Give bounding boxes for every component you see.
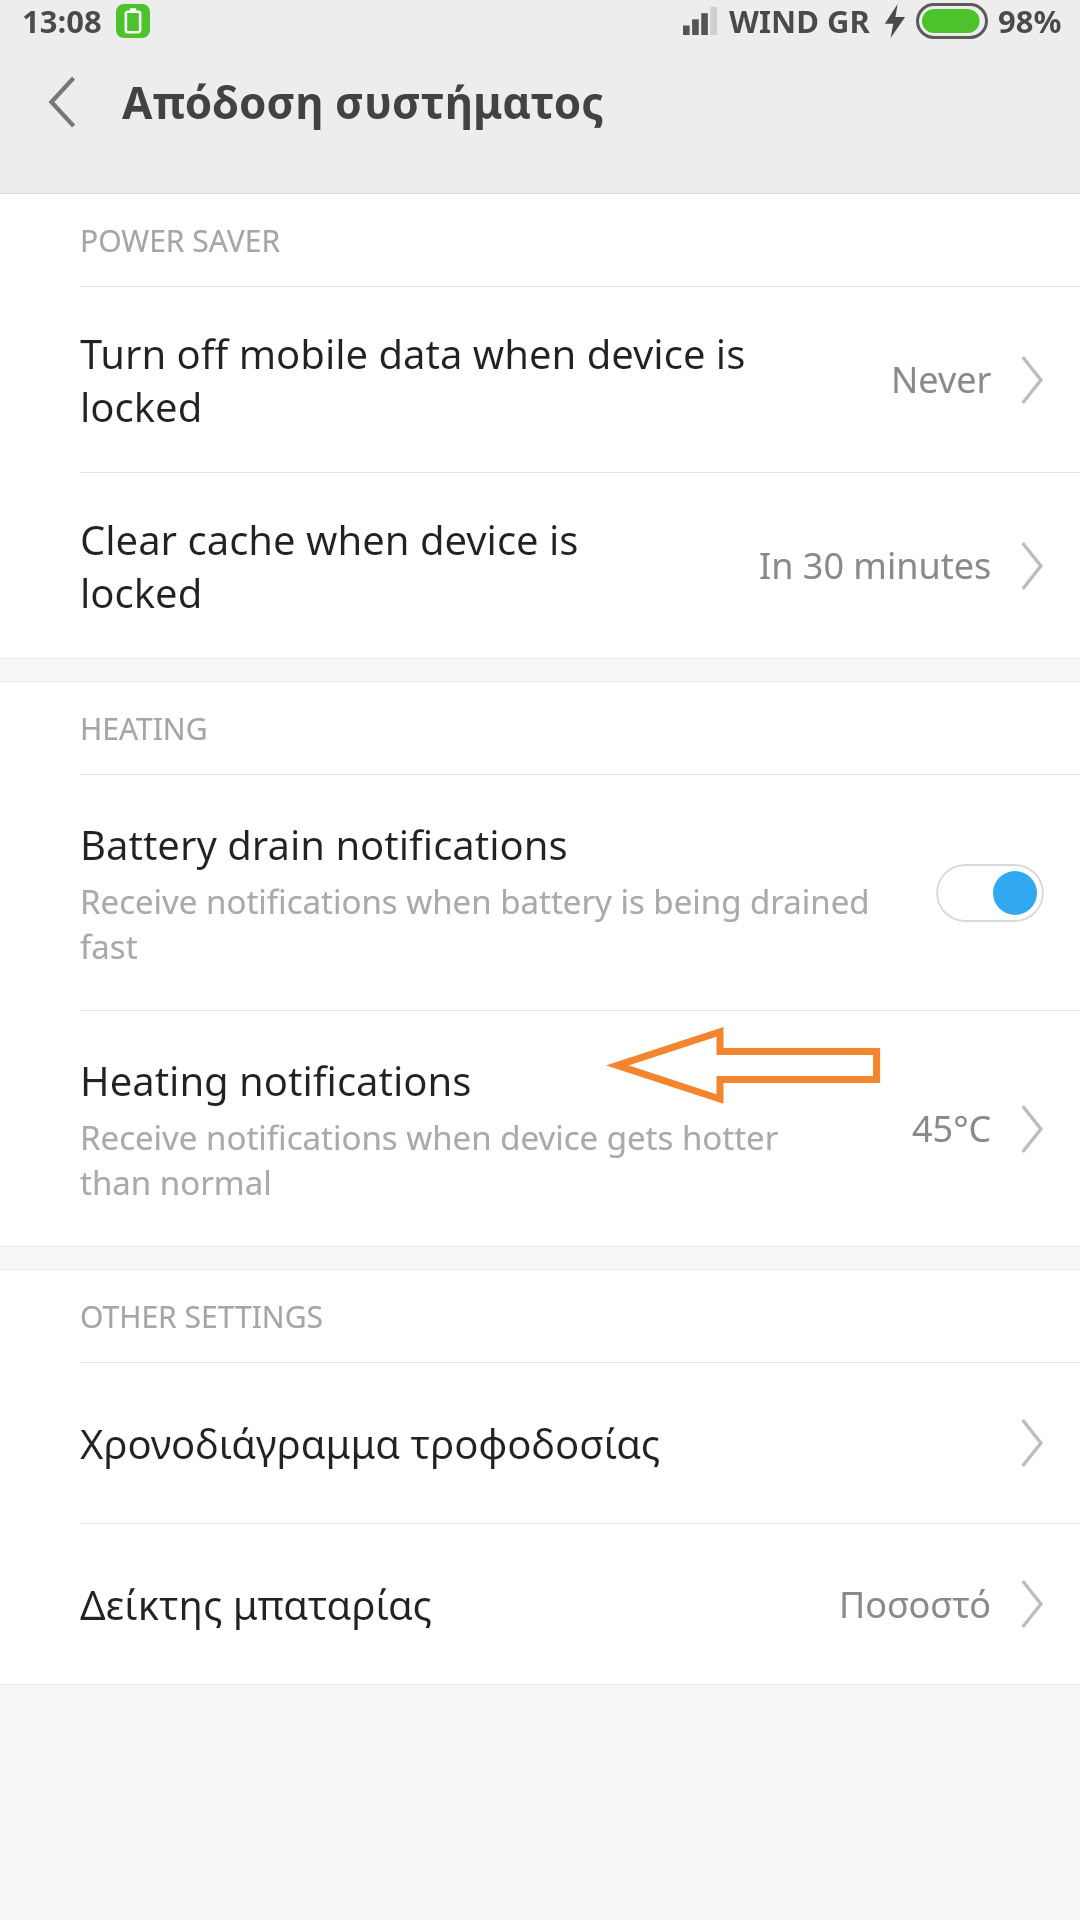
button[interactable]: Back (28, 66, 100, 138)
staticText: 98% (998, 0, 1062, 42)
staticText: Δείκτης μπαταρίας (80, 1577, 432, 1631)
staticText: Heating notifications (80, 1053, 472, 1107)
staticText: WIND GR (729, 0, 870, 42)
button[interactable]: Battery drain notifications (0, 775, 1080, 1010)
staticText: Receive notifications when device gets h… (80, 1115, 779, 1204)
staticText: Ποσοστό (839, 1580, 992, 1629)
staticText: HEATING (80, 708, 208, 749)
staticText: Never (891, 355, 992, 404)
staticText: 45°C (912, 1104, 992, 1153)
staticText: Receive notifications when battery is be… (80, 879, 870, 968)
staticText: POWER SAVER (80, 220, 281, 261)
button[interactable]: Battery drain notifications toggle (936, 864, 1044, 922)
button[interactable]: Heating notifications (0, 1011, 1080, 1246)
button[interactable]: Δείκτης μπαταρίας (0, 1524, 1080, 1684)
staticText: 13:08 (22, 0, 102, 42)
button[interactable]: Turn off mobile data when device is lock… (0, 287, 1080, 472)
staticText: OTHER SETTINGS (80, 1296, 323, 1337)
staticText: Χρονοδιάγραμμα τροφοδοσίας (80, 1416, 661, 1470)
staticText: Απόδοση συστήματος (122, 72, 604, 132)
button[interactable]: Clear cache when device is locked (0, 473, 1080, 658)
staticText: Battery drain notifications (80, 817, 568, 871)
button[interactable]: Χρονοδιάγραμμα τροφοδοσίας (0, 1363, 1080, 1523)
staticText: Clear cache when device is locked (80, 512, 579, 620)
staticText: In 30 minutes (759, 541, 992, 590)
staticText: Turn off mobile data when device is lock… (80, 326, 746, 434)
